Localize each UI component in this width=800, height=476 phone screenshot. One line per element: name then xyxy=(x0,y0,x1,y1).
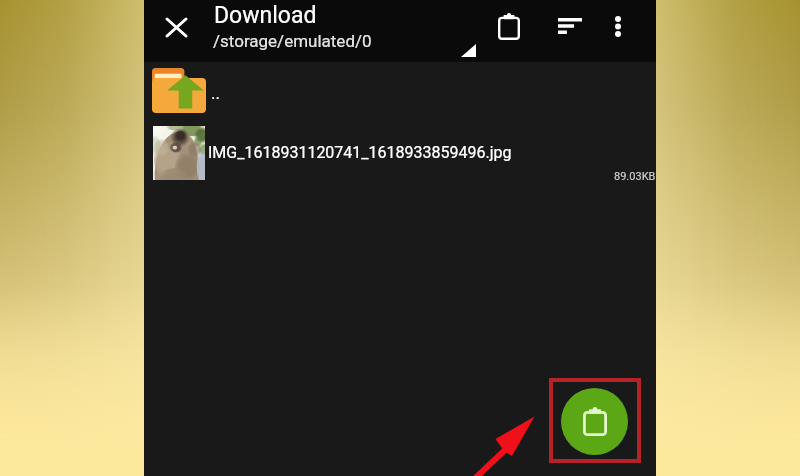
staticText: IMG_1618931120741_1618933859496.jpg xyxy=(208,143,512,162)
button[interactable]: Close xyxy=(154,5,199,50)
button[interactable]: Sort xyxy=(548,4,592,48)
staticText: /storage/emulated/0 xyxy=(213,31,372,51)
button[interactable]: .. xyxy=(144,62,656,119)
button[interactable]: Clipboard xyxy=(487,4,531,48)
button[interactable]: More options xyxy=(596,4,640,48)
staticText: Download xyxy=(214,2,317,29)
button[interactable]: Paste xyxy=(561,388,628,455)
staticText: 89.03KB xyxy=(614,170,656,183)
staticText: .. xyxy=(211,83,220,103)
button[interactable]: IMG_1618931120741_1618933859496.jpg xyxy=(144,119,656,185)
